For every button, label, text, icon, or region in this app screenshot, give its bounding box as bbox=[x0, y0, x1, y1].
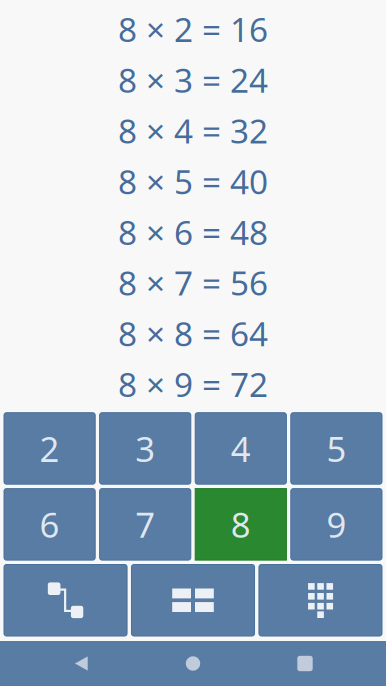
staticText: 5 bbox=[326, 425, 346, 471]
staticText: 2 bbox=[40, 425, 60, 471]
staticText: 4 bbox=[231, 425, 251, 471]
button[interactable]: Keypad bbox=[259, 564, 382, 636]
staticText: 8 × 4 = 32 bbox=[118, 108, 268, 153]
button[interactable]: 5 bbox=[291, 413, 382, 484]
staticText: 3 bbox=[135, 425, 155, 471]
staticText: 8 × 6 = 48 bbox=[118, 210, 268, 254]
staticText: 7 bbox=[135, 501, 155, 547]
staticText: 8 bbox=[231, 501, 251, 547]
button[interactable]: 7 bbox=[100, 489, 191, 560]
staticText: 8 × 7 = 56 bbox=[118, 260, 268, 305]
button[interactable]: Recents bbox=[249, 641, 361, 686]
button[interactable]: 3 bbox=[100, 413, 191, 484]
button[interactable]: 2 bbox=[4, 413, 95, 484]
staticText: 6 bbox=[40, 501, 60, 547]
staticText: 8 × 2 = 16 bbox=[118, 7, 268, 51]
button[interactable]: Grid layout bbox=[131, 564, 255, 636]
button[interactable]: Back bbox=[25, 641, 137, 686]
staticText: 8 × 3 = 24 bbox=[118, 58, 268, 102]
staticText: 8 × 5 = 40 bbox=[118, 159, 268, 203]
staticText: 8 × 8 = 64 bbox=[118, 311, 268, 355]
button[interactable]: 9 bbox=[291, 489, 382, 560]
staticText: 8 × 9 = 72 bbox=[118, 362, 268, 406]
button[interactable]: 4 bbox=[195, 413, 286, 484]
button[interactable]: 8 bbox=[195, 489, 286, 560]
button[interactable]: Branch layout bbox=[4, 564, 127, 636]
staticText: 9 bbox=[326, 501, 346, 547]
button[interactable]: Home bbox=[137, 641, 249, 686]
button[interactable]: 6 bbox=[4, 489, 95, 560]
